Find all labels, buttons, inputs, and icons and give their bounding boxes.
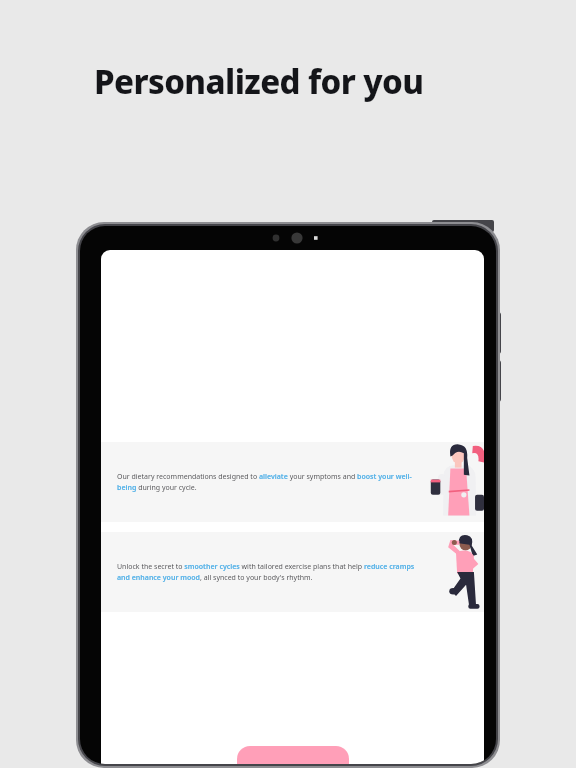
button[interactable]: Dietary recommendations: [101, 442, 484, 522]
staticText: Unlock the secret to smoother cycles wit…: [117, 562, 427, 582]
button[interactable]: Continue: [237, 746, 349, 764]
staticText: Our dietary recommendations designed to …: [117, 472, 427, 492]
button[interactable]: Exercise plans: [101, 532, 484, 612]
staticText: Personalized for you: [94, 59, 424, 104]
